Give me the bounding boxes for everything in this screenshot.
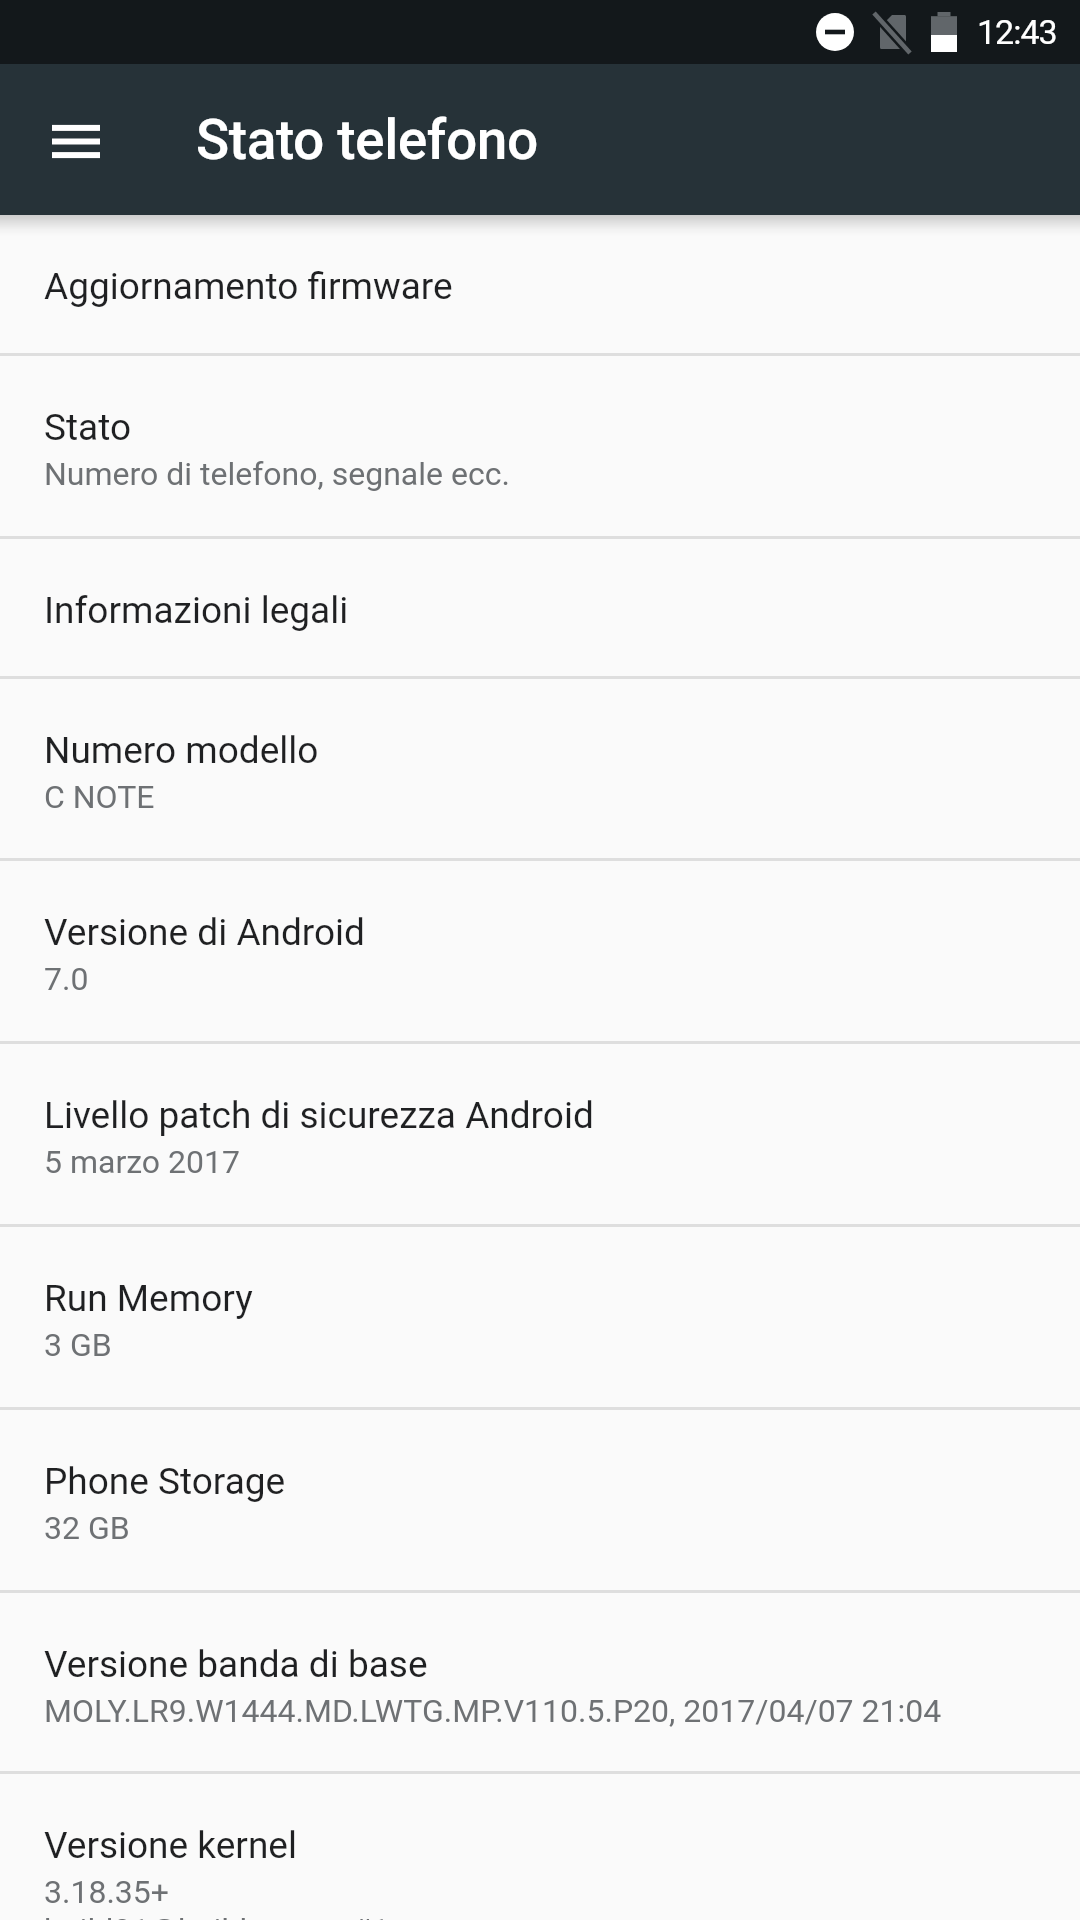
staticText: MOLY.LR9.W1444.MD.LWTG.MP.V110.5.P20, 20… <box>44 1692 942 1730</box>
button[interactable]: Stato <box>0 356 1080 539</box>
staticText: Numero modello <box>44 729 319 772</box>
button[interactable]: Informazioni legali <box>0 539 1080 679</box>
staticText: 3.18.35+ build01@build-server #1 Fri Apr… <box>44 1873 441 1920</box>
staticText: Stato <box>44 406 132 449</box>
staticText: Run Memory <box>44 1277 253 1320</box>
staticText: Livello patch di sicurezza Android <box>44 1094 594 1137</box>
staticText: Versione di Android <box>44 911 365 954</box>
button[interactable]: Phone Storage <box>0 1410 1080 1593</box>
staticText: Stato telefono <box>196 108 538 172</box>
button[interactable]: Aggiornamento firmware <box>0 215 1080 356</box>
button[interactable]: Numero modello <box>0 679 1080 861</box>
staticText: Phone Storage <box>44 1460 286 1503</box>
button[interactable]: Versione di Android <box>0 861 1080 1044</box>
button[interactable]: Open navigation menu <box>28 92 124 188</box>
staticText: C NOTE <box>44 778 155 816</box>
button[interactable]: Versione kernel <box>0 1774 1080 1920</box>
staticText: 3 GB <box>44 1326 112 1364</box>
staticText: Numero di telefono, segnale ecc. <box>44 455 510 493</box>
staticText: Versione banda di base <box>44 1643 428 1686</box>
staticText: 32 GB <box>44 1509 130 1547</box>
staticText: Aggiornamento firmware <box>44 265 453 308</box>
button[interactable]: Livello patch di sicurezza Android <box>0 1044 1080 1227</box>
staticText: 5 marzo 2017 <box>44 1143 240 1181</box>
button[interactable]: Versione banda di base <box>0 1593 1080 1774</box>
staticText: Versione kernel <box>44 1824 297 1867</box>
button[interactable]: Run Memory <box>0 1227 1080 1410</box>
staticText: 12:43 <box>977 12 1057 52</box>
staticText: 7.0 <box>44 960 89 998</box>
staticText: Informazioni legali <box>44 589 349 632</box>
